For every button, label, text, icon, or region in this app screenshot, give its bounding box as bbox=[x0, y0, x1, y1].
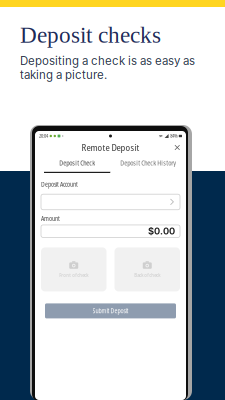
staticText: Deposit checks bbox=[20, 22, 161, 48]
staticText: Amount bbox=[41, 214, 60, 223]
staticText: Back of check bbox=[134, 271, 160, 278]
staticText: Submit Deposit bbox=[92, 307, 128, 315]
staticText: $0.00 bbox=[148, 225, 175, 237]
staticText: Depositing a check is as easy as bbox=[20, 54, 195, 68]
staticText: taking a picture. bbox=[20, 68, 107, 82]
staticText: 84% bbox=[170, 133, 177, 139]
button[interactable]: Close bbox=[174, 145, 180, 150]
staticText: Deposit Check History bbox=[120, 158, 176, 167]
button[interactable]: Front of check bbox=[41, 247, 106, 291]
button[interactable]: Deposit Check bbox=[35, 154, 110, 173]
staticText: Deposit Check bbox=[59, 158, 95, 167]
staticText: 20:04 bbox=[39, 133, 48, 139]
staticText: Front of check bbox=[59, 271, 88, 278]
button[interactable]: Submit Deposit bbox=[45, 303, 176, 318]
button[interactable]: Back of check bbox=[114, 247, 180, 291]
staticText: Remote Deposit bbox=[81, 141, 139, 154]
staticText: Deposit Account bbox=[41, 180, 78, 189]
button[interactable] bbox=[41, 194, 180, 210]
button[interactable]: Deposit Check History bbox=[110, 154, 186, 173]
